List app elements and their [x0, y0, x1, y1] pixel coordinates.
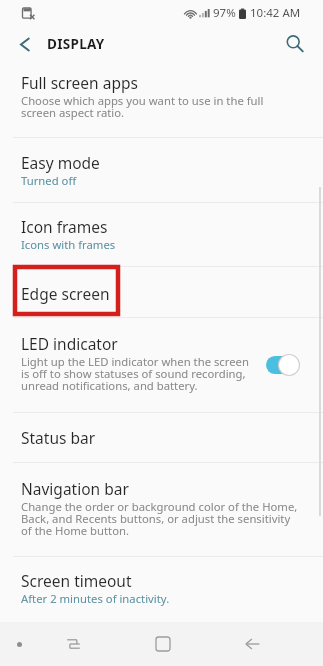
staticText: Navigation bar — [21, 478, 129, 499]
staticText: Status bar — [21, 427, 96, 448]
staticText: unread notifications, and battery. — [21, 378, 198, 393]
staticText: Full screen apps — [21, 72, 138, 93]
button[interactable]: Icon frames — [0, 203, 323, 266]
button[interactable]: Back — [236, 628, 268, 660]
staticText: screen aspect ratio. — [21, 105, 125, 120]
button[interactable]: Status bar — [0, 413, 323, 462]
staticText: Change the order or background color of … — [21, 499, 298, 514]
button[interactable]: Back — [8, 27, 42, 65]
staticText: 97% — [213, 5, 236, 21]
staticText: Easy mode — [21, 152, 100, 173]
button[interactable]: Edge screen — [0, 267, 323, 317]
button[interactable]: Recents — [57, 628, 89, 660]
staticText: Screen timeout — [21, 570, 132, 591]
staticText: of the Home button. — [21, 523, 130, 538]
button[interactable]: Screen timeout — [0, 557, 323, 617]
staticText: Icons with frames — [21, 237, 116, 252]
staticText: Icon frames — [21, 216, 108, 237]
staticText: Edge screen — [21, 283, 110, 304]
staticText: Choose which apps you want to use in the… — [21, 93, 264, 108]
button[interactable]: LED indicator — [0, 318, 323, 412]
button[interactable]: Keyboard indicator — [5, 630, 33, 658]
staticText: LED indicator — [21, 333, 118, 354]
staticText: 10:42 AM — [250, 5, 301, 21]
staticText: is off to show statuses of sound recordi… — [21, 366, 246, 381]
staticText: Turned off — [21, 173, 77, 188]
button[interactable]: Home — [147, 628, 179, 660]
button[interactable]: Navigation bar — [0, 463, 323, 556]
button[interactable]: Search — [278, 27, 312, 65]
staticText: After 2 minutes of inactivity. — [21, 591, 170, 606]
staticText: Light up the LED indicator when the scre… — [21, 354, 249, 369]
staticText: Back, and Recents buttons, or adjust the… — [21, 511, 291, 526]
staticText: DISPLAY — [47, 35, 105, 53]
button[interactable]: LED indicator toggle — [266, 354, 300, 376]
button[interactable]: Full screen apps — [0, 66, 323, 137]
button[interactable]: Easy mode — [0, 138, 323, 202]
